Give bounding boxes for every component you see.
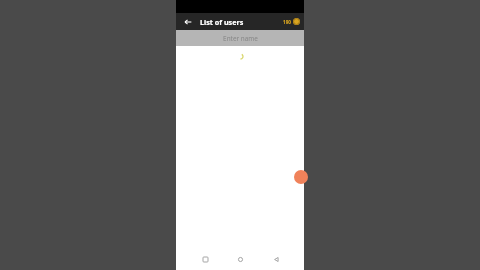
button[interactable]: Enter name	[176, 30, 304, 46]
button[interactable]: 190	[283, 18, 300, 25]
button[interactable]: Recent apps	[198, 252, 212, 266]
staticText: 190	[283, 19, 291, 25]
button[interactable]: Back	[269, 252, 283, 266]
button[interactable]: Home	[233, 252, 247, 266]
other: Coins	[293, 18, 300, 25]
staticText: Enter name	[223, 34, 258, 43]
button[interactable]: Back	[182, 16, 193, 27]
staticText: List of users	[200, 17, 244, 27]
button[interactable]: Add user	[294, 170, 308, 184]
